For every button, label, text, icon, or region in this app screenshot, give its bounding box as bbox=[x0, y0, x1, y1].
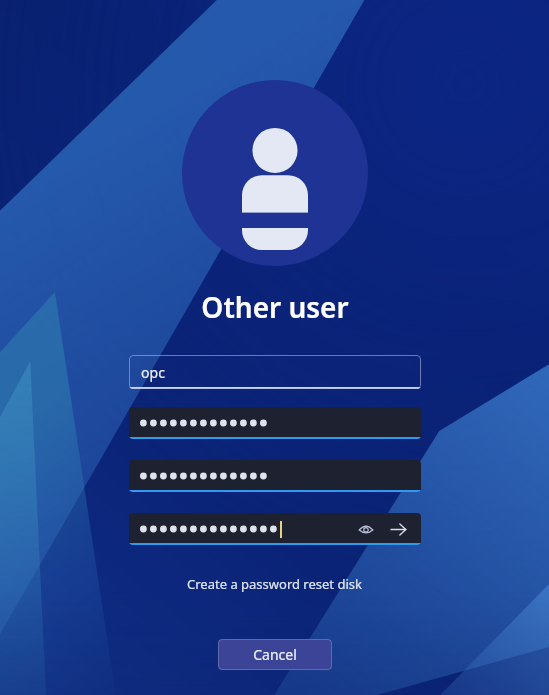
button[interactable]: Cancel bbox=[218, 639, 332, 670]
staticText: Create a password reset disk bbox=[187, 575, 362, 593]
staticText: opc bbox=[141, 363, 165, 382]
button[interactable]: opc bbox=[129, 355, 421, 389]
staticText: Other user bbox=[201, 288, 349, 326]
button[interactable]: Submit bbox=[385, 516, 411, 542]
button[interactable]: Reveal password bbox=[129, 513, 421, 545]
button[interactable]: Reveal password bbox=[353, 516, 379, 542]
staticText: Cancel bbox=[253, 645, 297, 664]
button[interactable]: Create a password reset disk bbox=[181, 572, 368, 596]
button[interactable] bbox=[129, 407, 421, 439]
button[interactable] bbox=[129, 460, 421, 492]
